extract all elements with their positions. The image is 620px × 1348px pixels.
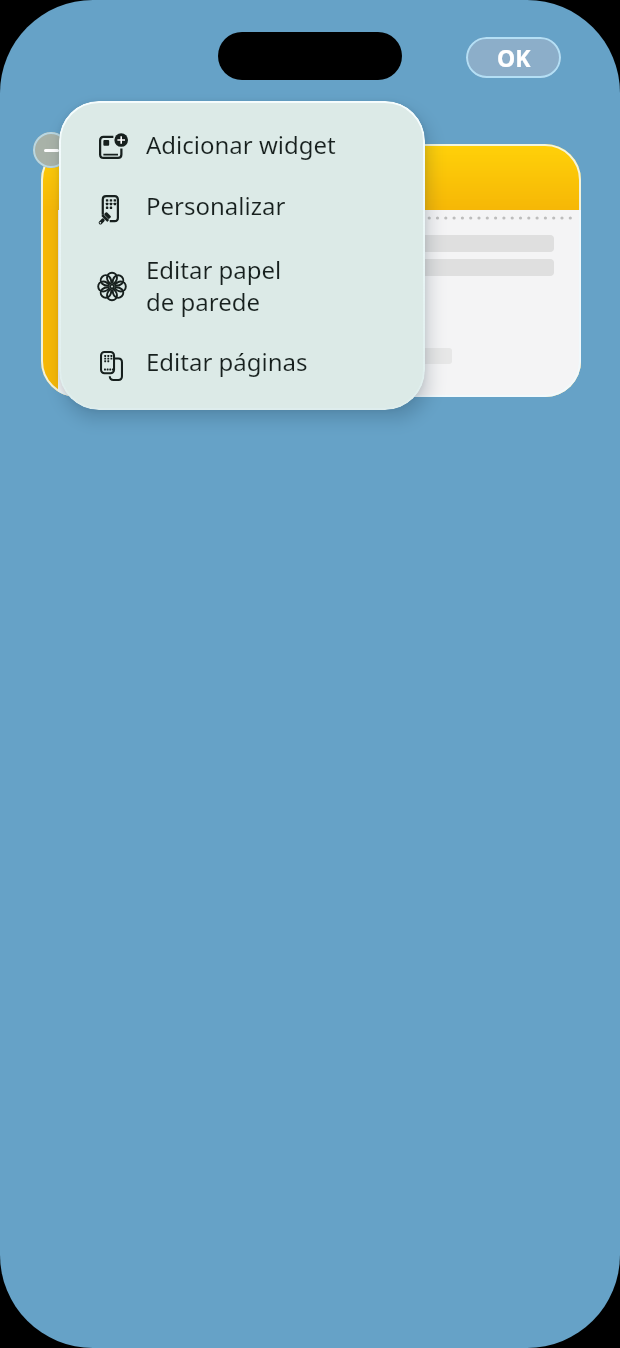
staticText: Adicionar widget <box>146 128 336 161</box>
staticText: Editar páginas <box>146 345 308 378</box>
button[interactable]: Editar papel <box>59 241 425 333</box>
staticText: OK <box>497 42 531 73</box>
button[interactable]: Personalizar <box>59 174 425 234</box>
button[interactable]: Editar páginas <box>59 334 425 398</box>
staticText: Personalizar <box>146 189 286 222</box>
button[interactable]: Adicionar widget <box>59 113 425 173</box>
button[interactable] <box>41 144 581 397</box>
staticText: de parede <box>146 285 261 318</box>
staticText: Editar papel <box>146 253 282 286</box>
button[interactable]: Remove widget <box>33 132 69 168</box>
button[interactable]: OK <box>466 37 561 78</box>
